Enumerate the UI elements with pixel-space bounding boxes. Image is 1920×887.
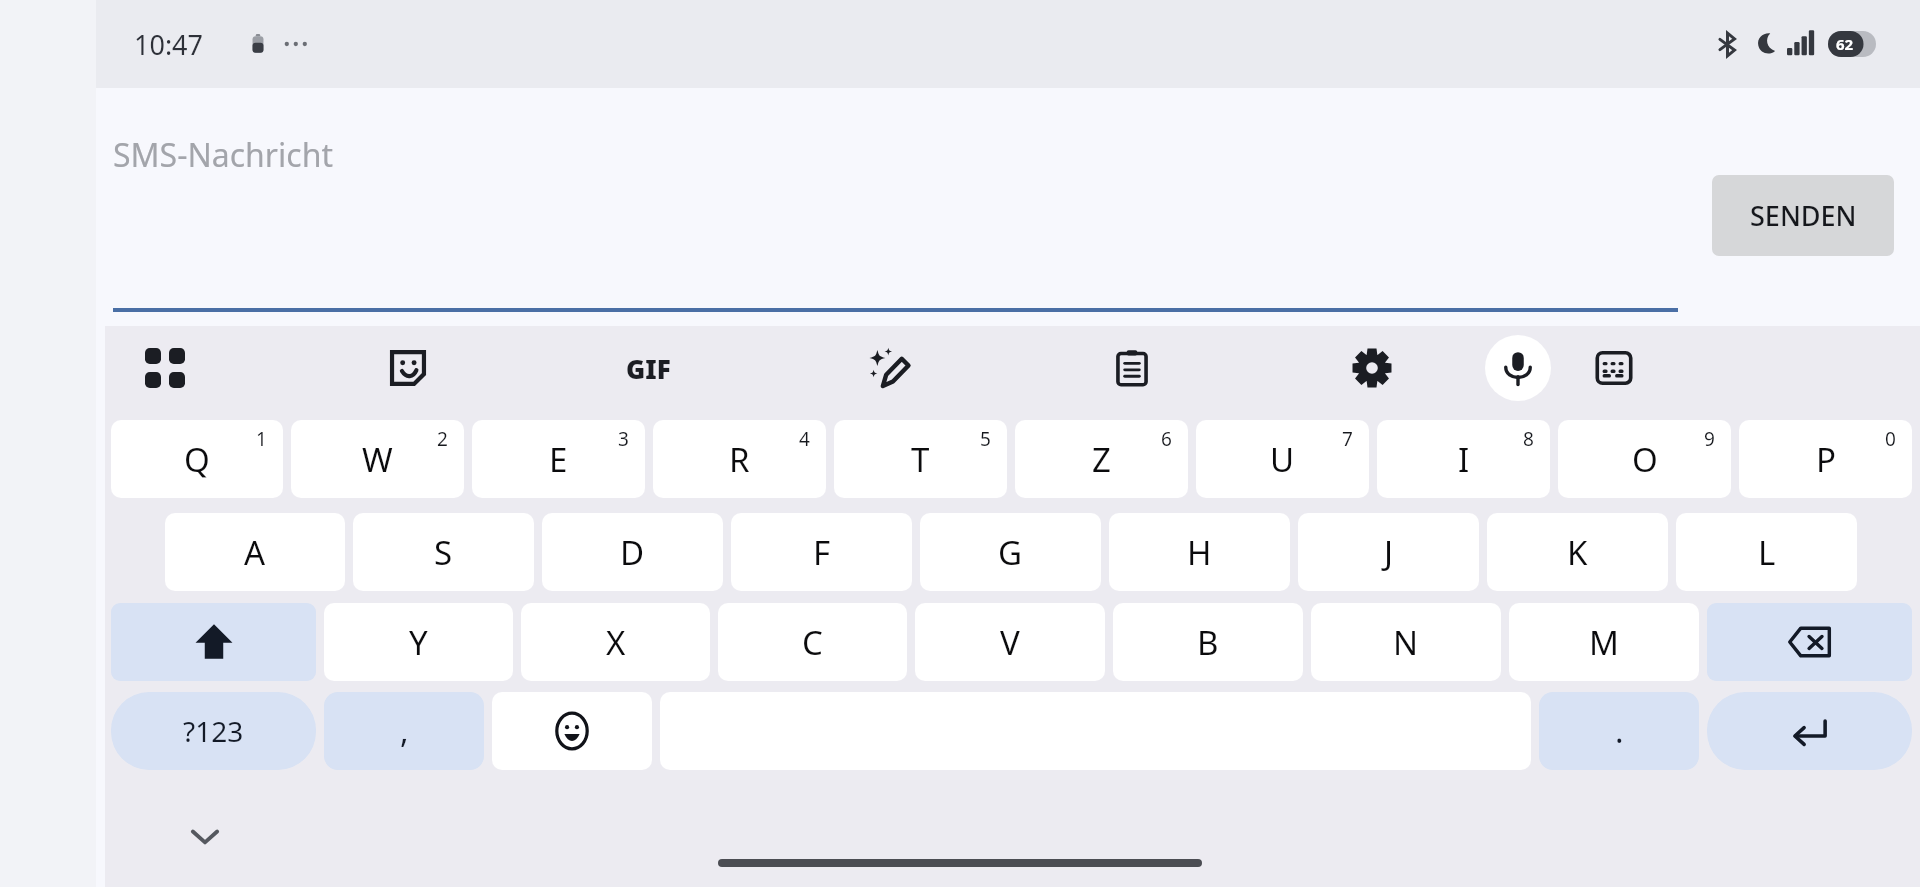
button[interactable]: T [834, 420, 1007, 498]
staticText: 10:47 [134, 26, 204, 63]
button[interactable]: F [731, 513, 912, 591]
staticText: 0 [1885, 426, 1896, 452]
staticText: P [1816, 437, 1836, 482]
button[interactable]: R [653, 420, 826, 498]
button[interactable]: B [1113, 603, 1303, 681]
button[interactable]: Hide keyboard [165, 796, 245, 876]
staticText: O [1632, 437, 1658, 482]
staticText: Y [409, 620, 428, 665]
button[interactable]: U [1196, 420, 1369, 498]
staticText: 5 [980, 426, 991, 452]
button[interactable]: H [1109, 513, 1290, 591]
staticText: G [998, 530, 1023, 575]
staticText: 3 [618, 426, 629, 452]
button[interactable]: Settings [1342, 338, 1402, 398]
staticText: 2 [437, 426, 448, 452]
staticText: J [1384, 530, 1394, 575]
button[interactable]: Apps [135, 338, 195, 398]
staticText: . [1615, 709, 1624, 753]
staticText: T [911, 437, 930, 482]
staticText: ?123 [183, 712, 244, 750]
button[interactable]: Clipboard [1102, 338, 1162, 398]
button[interactable]: I [1377, 420, 1550, 498]
button[interactable]: Z [1015, 420, 1188, 498]
button[interactable]: X [521, 603, 710, 681]
button[interactable]: E [472, 420, 645, 498]
button[interactable]: Comma [324, 692, 484, 770]
staticText: C [802, 620, 823, 665]
staticText: 1 [256, 426, 267, 452]
staticText: 8 [1523, 426, 1534, 452]
staticText: SMS-Nachricht [113, 133, 334, 177]
staticText: U [1270, 437, 1295, 482]
staticText: 9 [1704, 426, 1715, 452]
staticText: GIF [626, 351, 671, 386]
button[interactable]: Stickers [378, 338, 438, 398]
button[interactable]: G [920, 513, 1101, 591]
staticText: H [1187, 530, 1212, 575]
staticText: V [1000, 620, 1020, 665]
staticText: 62 [1836, 34, 1854, 54]
staticText: 6 [1161, 426, 1172, 452]
staticText: 4 [799, 426, 810, 452]
button[interactable]: AI write [860, 338, 920, 398]
button[interactable]: M [1509, 603, 1699, 681]
staticText: W [362, 437, 393, 482]
button[interactable]: J [1298, 513, 1479, 591]
button[interactable]: P [1739, 420, 1912, 498]
button[interactable]: W [291, 420, 464, 498]
button[interactable]: Q [111, 420, 283, 498]
staticText: S [434, 530, 453, 575]
button[interactable]: Enter [1707, 692, 1912, 770]
staticText: E [549, 437, 568, 482]
button[interactable]: SENDEN [1712, 175, 1894, 256]
button[interactable]: A [165, 513, 345, 591]
staticText: R [729, 437, 750, 482]
button[interactable]: GIF [618, 338, 678, 398]
staticText: Z [1092, 437, 1111, 482]
button[interactable]: Period [1539, 692, 1699, 770]
staticText: D [620, 530, 645, 575]
staticText: B [1197, 620, 1219, 665]
staticText: M [1589, 620, 1619, 665]
staticText: SENDEN [1750, 197, 1857, 234]
staticText: X [606, 620, 626, 665]
button[interactable]: S [353, 513, 534, 591]
button[interactable]: SMS-Nachricht [100, 96, 1600, 306]
staticText: F [813, 530, 831, 575]
button[interactable]: Backspace [1707, 603, 1912, 681]
staticText: L [1758, 530, 1776, 575]
button[interactable]: O [1558, 420, 1731, 498]
button[interactable]: D [542, 513, 723, 591]
staticText: A [244, 530, 266, 575]
button[interactable]: C [718, 603, 907, 681]
button[interactable]: Emoji [492, 692, 652, 770]
button[interactable]: K [1487, 513, 1668, 591]
button[interactable]: N [1311, 603, 1501, 681]
button[interactable]: V [915, 603, 1105, 681]
button[interactable]: ?123 [111, 692, 316, 770]
staticText: I [1458, 437, 1470, 482]
staticText: N [1393, 620, 1419, 665]
staticText: , [400, 709, 409, 753]
button[interactable]: L [1676, 513, 1857, 591]
staticText: Q [184, 437, 210, 482]
staticText: 7 [1342, 426, 1353, 452]
button[interactable]: Number pad [1584, 338, 1644, 398]
button[interactable]: Y [324, 603, 513, 681]
staticText: K [1567, 530, 1588, 575]
button[interactable]: Shift [111, 603, 316, 681]
button[interactable]: Voice input [1485, 335, 1551, 401]
